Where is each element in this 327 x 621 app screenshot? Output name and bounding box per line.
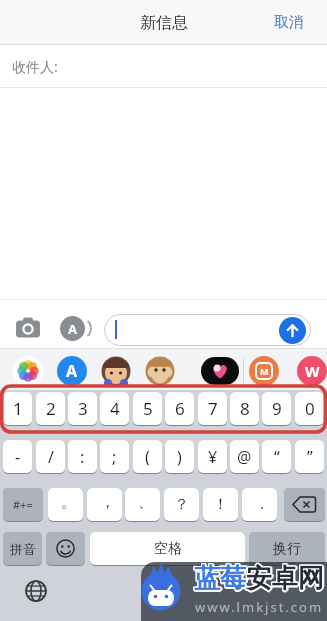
staticText: / (48, 446, 54, 468)
button[interactable] (284, 488, 325, 521)
button[interactable]: 7 (198, 392, 227, 425)
staticText: 0 (305, 397, 315, 420)
staticText: 8 (240, 397, 250, 420)
button[interactable] (16, 317, 41, 338)
staticText: @ (237, 446, 252, 468)
staticText: 蓝莓安卓网 (195, 561, 325, 594)
staticText: 5 (143, 397, 153, 420)
staticText: 空格 (154, 540, 182, 558)
staticText: ？ (174, 495, 189, 514)
button[interactable]: 9 (262, 392, 291, 425)
staticText: 6 (175, 397, 185, 420)
staticText: 9 (272, 397, 282, 420)
staticText: “ (274, 446, 280, 468)
staticText: 蓝莓安卓网 (196, 562, 326, 595)
staticText: W (305, 361, 320, 381)
staticText: - (15, 446, 21, 468)
staticText: 4 (110, 397, 120, 420)
staticText: 蓝莓安卓网 (194, 562, 324, 595)
staticText: ; (112, 446, 117, 468)
staticText: 。 (61, 493, 76, 512)
button[interactable]: 。 (48, 488, 83, 521)
staticText: ( (145, 446, 150, 468)
button[interactable]: ？ (164, 488, 199, 521)
button[interactable]: 5 (133, 392, 162, 425)
button[interactable]: 3 (68, 392, 97, 425)
button[interactable]: 8 (230, 392, 259, 425)
staticText: 蓝莓安卓网 (194, 561, 324, 594)
button[interactable]: ” (295, 440, 324, 473)
staticText: 新信息 (140, 13, 188, 33)
staticText: ¥ (208, 446, 218, 468)
button[interactable]: : (68, 440, 97, 473)
staticText: 蓝莓安卓网 (193, 561, 323, 594)
button[interactable]: “ (262, 440, 291, 473)
button[interactable]: ， (87, 488, 122, 521)
button[interactable] (104, 314, 311, 346)
staticText: 收件人: (12, 57, 58, 76)
button[interactable] (279, 317, 306, 344)
staticText: ！ (213, 495, 228, 514)
staticText: 蓝莓安卓网 (193, 563, 323, 596)
staticText: : (80, 446, 85, 468)
staticText: 拼音 (10, 541, 36, 557)
staticText: 蓝莓安卓网 (195, 563, 325, 596)
staticText: 3 (78, 397, 88, 420)
button[interactable]: 取消 (262, 5, 316, 40)
button[interactable]: . (242, 488, 277, 521)
staticText: M (260, 365, 269, 377)
staticText: www.lmkjst.com (195, 598, 324, 616)
staticText: A (66, 360, 78, 382)
staticText: ， (100, 493, 115, 512)
staticText: 2 (46, 397, 56, 420)
button[interactable] (145, 356, 175, 386)
button[interactable]: 拼音 (3, 532, 42, 565)
button[interactable]: A (57, 356, 87, 386)
button[interactable] (101, 356, 131, 386)
staticText: 换行 (273, 540, 301, 558)
button[interactable] (25, 580, 47, 602)
button[interactable] (201, 357, 239, 385)
button[interactable]: ( (133, 440, 162, 473)
staticText: . (260, 493, 265, 513)
button[interactable]: ) (165, 440, 194, 473)
button[interactable]: 、 (125, 488, 160, 521)
button[interactable]: W (297, 356, 327, 386)
staticText: 1 (13, 397, 23, 420)
button[interactable]: 换行 (249, 532, 325, 565)
button[interactable] (13, 356, 43, 386)
button[interactable]: M (249, 356, 279, 386)
button[interactable]: #+= (3, 488, 43, 521)
button[interactable]: 1 (3, 392, 32, 425)
button[interactable]: ; (100, 440, 129, 473)
button[interactable]: / (36, 440, 65, 473)
staticText: 蓝莓安卓网 (194, 564, 324, 597)
staticText: 取消 (274, 13, 304, 32)
button[interactable]: 空格 (90, 532, 245, 565)
button[interactable] (46, 532, 85, 565)
button[interactable]: @ (230, 440, 259, 473)
staticText: 蓝莓安卓网 (193, 562, 323, 595)
button[interactable]: A (60, 316, 85, 341)
button[interactable]: 2 (36, 392, 65, 425)
staticText: ) (177, 446, 182, 468)
staticText: ” (307, 446, 313, 468)
staticText: 、 (138, 493, 153, 512)
staticText: #+= (13, 497, 33, 512)
button[interactable]: 6 (165, 392, 194, 425)
button[interactable]: 0 (295, 392, 324, 425)
button[interactable]: ¥ (198, 440, 227, 473)
button[interactable]: - (3, 440, 32, 473)
button[interactable]: ！ (203, 488, 238, 521)
button[interactable]: 收件人: (0, 45, 327, 88)
staticText: A (68, 320, 77, 338)
button[interactable]: 4 (100, 392, 129, 425)
staticText: 7 (208, 397, 218, 420)
